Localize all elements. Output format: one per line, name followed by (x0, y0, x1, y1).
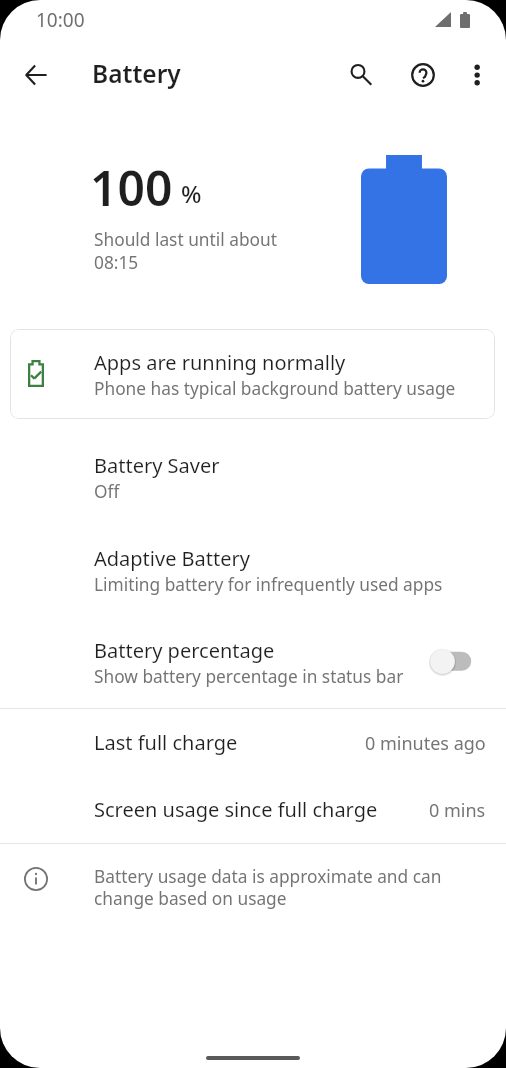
staticText: 0 mins (429, 798, 486, 823)
button[interactable]: Battery Saver (0, 431, 506, 523)
staticText: Adaptive Battery (94, 545, 251, 572)
staticText: Battery (92, 57, 181, 90)
button[interactable]: Apps are running normally (10, 329, 495, 419)
button[interactable]: Battery percentage toggle (420, 637, 484, 685)
staticText: Phone has typical background battery usa… (94, 377, 456, 401)
button[interactable]: Screen usage since full charge (0, 780, 506, 843)
button[interactable]: Help (399, 51, 447, 99)
button[interactable]: Last full charge (0, 713, 506, 780)
button[interactable]: Battery percentage (0, 616, 506, 708)
button[interactable]: Back (12, 51, 60, 99)
button[interactable]: Search (336, 51, 384, 99)
staticText: Battery usage data is approximate and ca… (94, 865, 452, 910)
staticText: Battery Saver (94, 452, 220, 479)
staticText: Screen usage since full charge (94, 796, 378, 823)
staticText: Off (94, 480, 120, 504)
staticText: % (181, 177, 202, 210)
button[interactable]: More options (453, 51, 501, 99)
staticText: 0 minutes ago (365, 731, 486, 756)
button[interactable]: Adaptive Battery (0, 524, 506, 616)
staticText: Show battery percentage in status bar (94, 665, 404, 689)
staticText: Last full charge (94, 729, 238, 756)
staticText: 10:00 (36, 7, 85, 33)
staticText: Apps are running normally (94, 349, 346, 376)
staticText: Limiting battery for infrequently used a… (94, 573, 443, 597)
staticText: Should last until about 08:15 (94, 228, 277, 274)
staticText: 100 (90, 155, 173, 220)
staticText: Battery percentage (94, 637, 275, 664)
